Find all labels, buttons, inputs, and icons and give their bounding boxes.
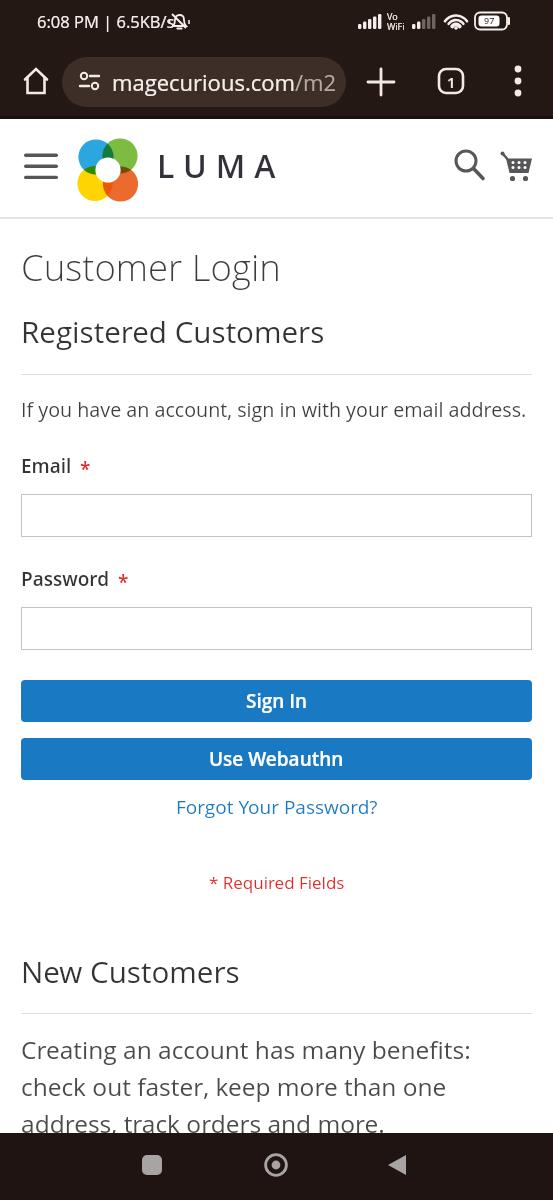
staticText: New Customers — [21, 951, 240, 991]
button[interactable] — [21, 607, 532, 650]
button[interactable] — [431, 61, 471, 101]
staticText: * — [80, 456, 91, 482]
button[interactable] — [14, 143, 68, 191]
staticText: address, track orders and more. — [21, 1107, 385, 1140]
button[interactable]: magecurious.com — [62, 57, 346, 107]
button[interactable] — [444, 144, 492, 192]
button[interactable] — [500, 62, 538, 102]
button[interactable]: Use Webauthn — [21, 738, 532, 780]
staticText: Creating an account has many benefits: — [21, 1033, 471, 1066]
staticText: If you have an account, sign in with you… — [21, 396, 527, 423]
button[interactable] — [373, 1141, 421, 1189]
staticText: 6:08 PM | 6.5KB/s — [37, 10, 175, 32]
staticText: Forgot Your Password? — [176, 794, 378, 820]
staticText: * Required Fields — [209, 871, 345, 894]
staticText: /m2 — [295, 67, 337, 97]
staticText: Registered Customers — [21, 311, 325, 351]
button[interactable]: Forgot Your Password? — [0, 794, 553, 820]
button[interactable] — [496, 144, 542, 192]
staticText: check out faster, keep more than one — [21, 1070, 447, 1103]
button[interactable] — [16, 56, 56, 96]
button[interactable] — [361, 62, 401, 102]
staticText: Password — [21, 566, 109, 592]
button[interactable] — [21, 494, 532, 537]
button[interactable] — [252, 1141, 300, 1189]
staticText: Customer Login — [21, 242, 281, 292]
staticText: LUMA — [157, 144, 285, 188]
staticText: Vo WiFi — [387, 10, 405, 32]
staticText: 97 — [484, 14, 495, 26]
staticText: Use Webauthn — [209, 746, 344, 772]
staticText: 1 — [447, 72, 456, 92]
staticText: magecurious.com — [112, 67, 295, 97]
button[interactable] — [128, 1141, 176, 1189]
button[interactable]: Sign In — [21, 680, 532, 722]
staticText: Sign In — [246, 688, 308, 714]
staticText: * — [118, 569, 129, 595]
staticText: Email — [21, 453, 72, 479]
